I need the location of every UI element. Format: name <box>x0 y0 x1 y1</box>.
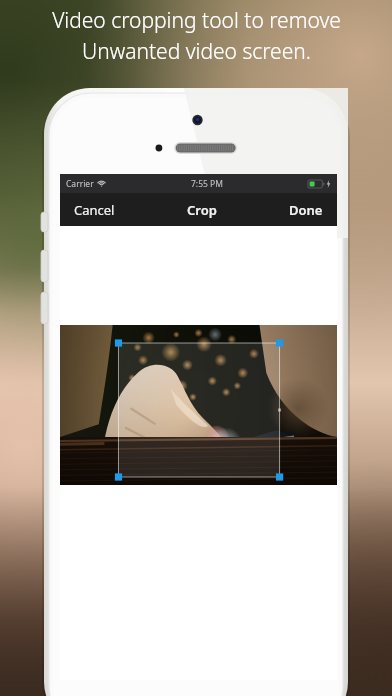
button[interactable]: Cancel <box>68 193 121 226</box>
staticText: Video cropping tool to remove <box>52 6 341 35</box>
staticText: Carrier <box>66 178 94 190</box>
button[interactable]: Done <box>283 193 329 226</box>
staticText: Crop <box>187 201 217 219</box>
staticText: 7:55 PM <box>191 178 223 190</box>
staticText: Done <box>289 201 323 219</box>
staticText: Unwanted video screen. <box>82 37 311 66</box>
staticText: Cancel <box>74 201 115 219</box>
